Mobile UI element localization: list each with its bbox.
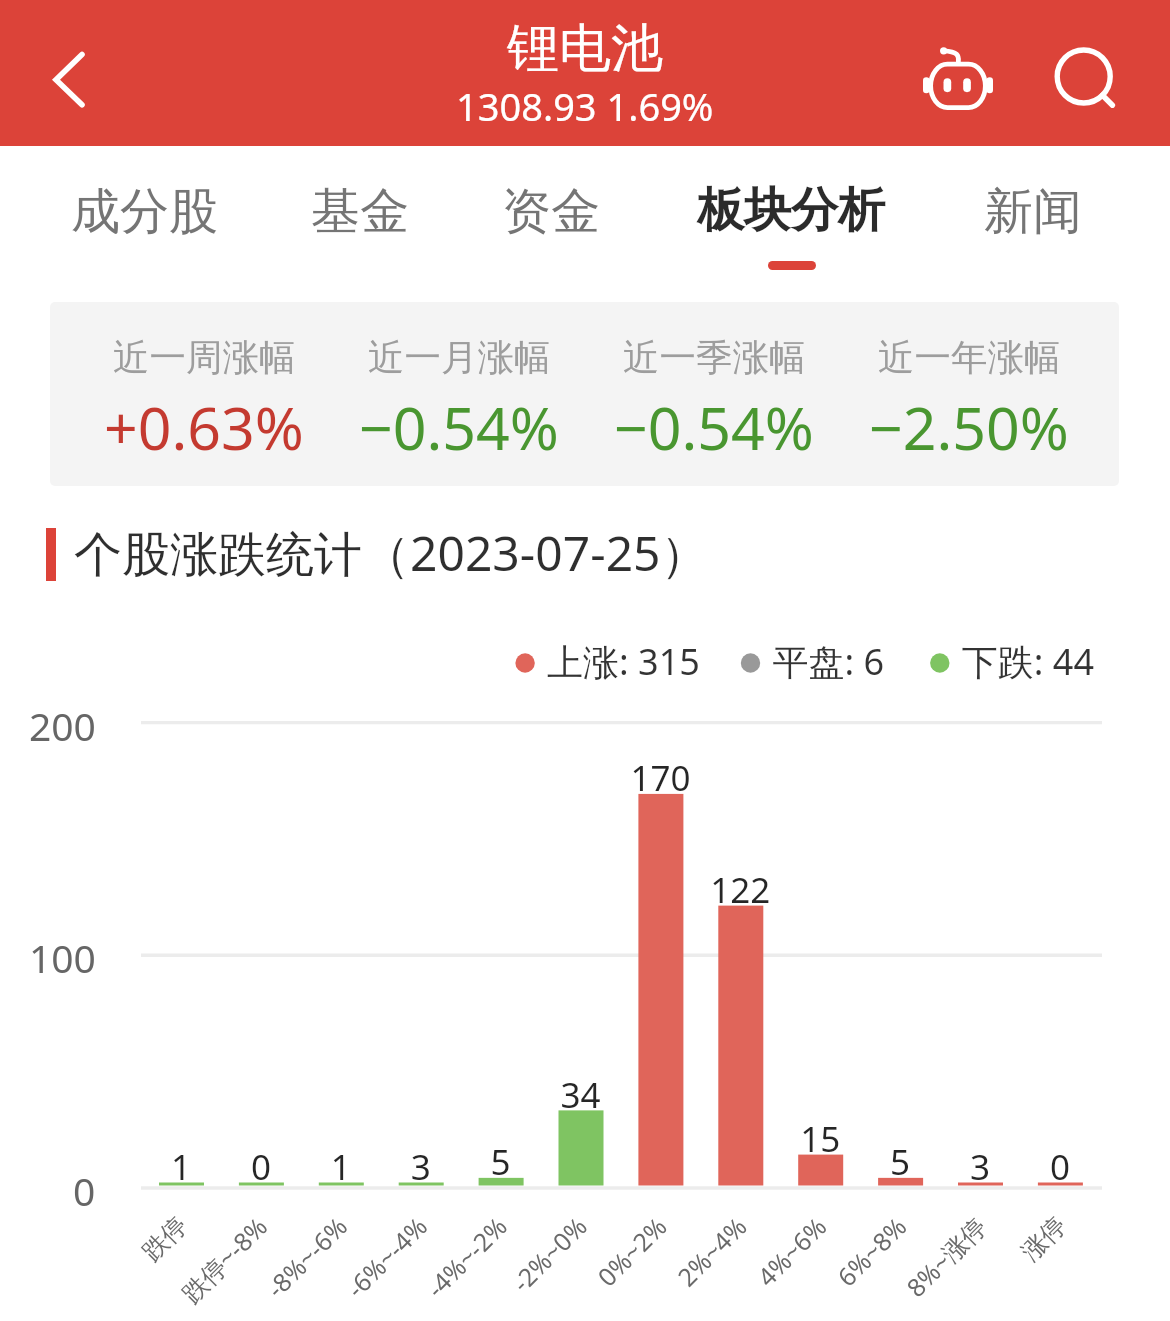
button[interactable]: 近一周涨幅 (64, 302, 344, 486)
staticText: −0.54% (614, 387, 814, 467)
button[interactable]: 基金 (290, 146, 430, 292)
button[interactable]: 近一年涨幅 (829, 302, 1109, 486)
staticText: 新闻 (984, 181, 1082, 243)
staticText: 近一月涨幅 (368, 335, 551, 381)
button[interactable]: 近一月涨幅 (319, 302, 599, 486)
button[interactable]: 新闻 (958, 146, 1108, 292)
staticText: 近一周涨幅 (113, 335, 296, 381)
button[interactable]: 板块分析 (671, 146, 911, 292)
staticText: 锂电池 (507, 16, 663, 82)
staticText: 资金 (502, 181, 600, 243)
button[interactable]: AI assistant (888, 8, 1028, 148)
staticText: 近一年涨幅 (878, 335, 1061, 381)
button[interactable]: 资金 (481, 146, 621, 292)
button[interactable]: Search (1020, 13, 1160, 153)
button[interactable]: Back (0, 0, 150, 146)
staticText: 近一季涨幅 (623, 335, 806, 381)
staticText: 板块分析 (697, 181, 885, 240)
staticText: 成分股 (71, 181, 218, 243)
staticText: −2.50% (869, 387, 1069, 467)
staticText: 1308.93 1.69% (456, 80, 714, 132)
staticText: +0.63% (104, 387, 304, 467)
button[interactable]: 成分股 (49, 146, 239, 292)
staticText: 基金 (311, 181, 409, 243)
staticText: 个股涨跌统计（2023-07-25） (74, 520, 709, 586)
button[interactable]: 近一季涨幅 (574, 302, 854, 486)
staticText: −0.54% (359, 387, 559, 467)
